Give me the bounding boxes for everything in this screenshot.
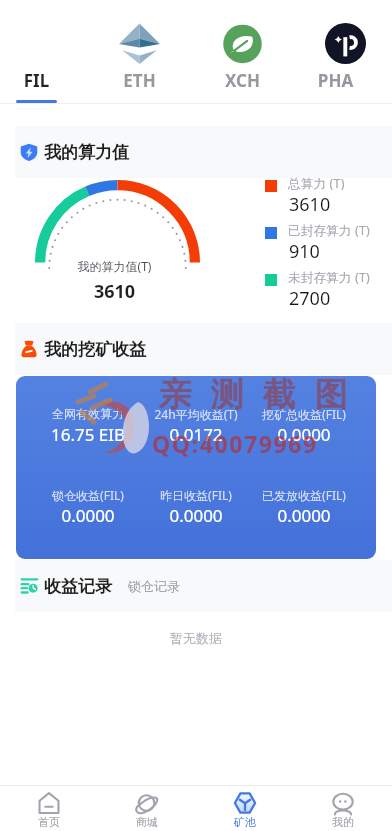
staticText: 亲测截图 [149,376,357,416]
button[interactable]: FIL [0,0,88,104]
staticText: 24h平均收益(T) [142,406,250,422]
staticText: 暂无数据 [170,630,222,646]
staticText: 锁仓记录 [128,578,180,594]
staticText: 0.0000 [34,504,142,527]
staticText: PHA [294,69,377,92]
button[interactable]: 首页 [0,785,98,831]
staticText: 锁仓收益(FIL) [34,487,142,503]
button[interactable]: 矿池 [196,785,294,831]
button[interactable]: 我的 [294,785,392,831]
staticText: FIL [0,69,88,92]
staticText: 昨日收益(FIL) [142,487,250,503]
staticText: 商城 [136,815,158,829]
staticText: 0.0000 [142,504,250,527]
staticText: 16.75 EIB [34,423,142,446]
button[interactable]: 商城 [98,785,196,831]
staticText: 0.0172 [142,423,250,446]
staticText: 未封存算力 (T) [288,269,371,286]
staticText: 0.0000 [250,423,358,446]
staticText: ETH [88,69,191,92]
button[interactable]: 锁仓记录 [128,578,180,594]
staticText: 总算力 (T) [288,175,345,192]
staticText: 910 [289,239,320,264]
staticText: 我的 [332,815,354,829]
staticText: 3610 [0,279,229,304]
staticText: XCH [191,69,294,92]
button[interactable]: PHA [294,0,377,104]
staticText: 已发放收益(FIL) [250,487,358,503]
staticText: 我的算力值 [44,142,129,163]
staticText: 2700 [289,286,331,311]
staticText: 全网有效算力 [34,406,142,421]
staticText: 收益记录 [44,576,112,597]
staticText: 我的挖矿收益 [44,339,146,360]
staticText: 挖矿总收益(FIL) [250,406,358,422]
button[interactable]: XCH [191,0,294,104]
staticText: 首页 [38,815,60,829]
staticText: 0.0000 [250,504,358,527]
staticText: 矿池 [234,815,256,829]
staticText: 我的算力值(T) [0,258,229,274]
button[interactable]: ETH [88,0,191,104]
staticText: QQ:40079969 [152,428,318,459]
staticText: 3610 [289,192,331,217]
staticText: 已封存算力 (T) [288,222,371,239]
